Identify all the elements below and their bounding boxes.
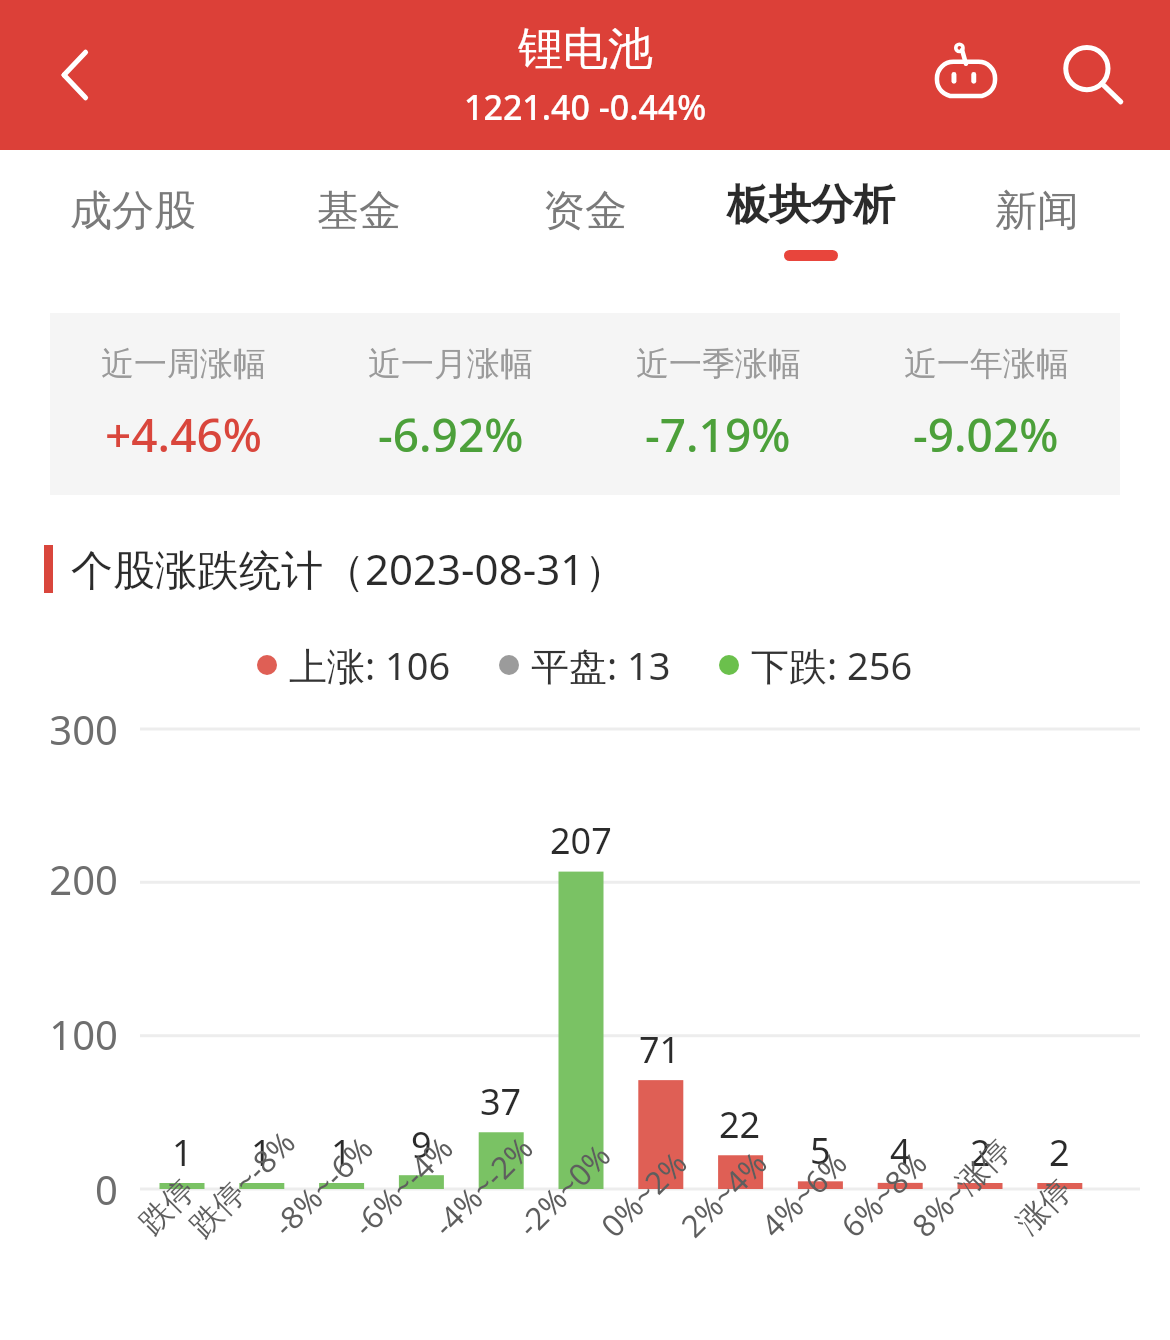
button[interactable]: 近一月涨幅 <box>317 313 584 495</box>
staticText: 200 <box>49 852 118 906</box>
staticText: 上涨: 106 <box>289 639 451 691</box>
staticText: 5 <box>810 1126 831 1175</box>
staticText: 9 <box>411 1120 432 1169</box>
staticText: 100 <box>49 1007 118 1061</box>
staticText: -8%~-6% <box>263 1127 382 1245</box>
staticText: 涨停 <box>1008 1171 1080 1242</box>
staticText: 近一年涨幅 <box>904 343 1069 385</box>
staticText: 跌停~-8% <box>180 1121 304 1245</box>
staticText: -6.92% <box>378 403 524 466</box>
staticText: 2%~4% <box>671 1142 775 1246</box>
staticText: 基金 <box>317 185 401 238</box>
button[interactable]: Back <box>28 27 124 123</box>
button[interactable]: 基金 <box>246 150 472 290</box>
staticText: -9.02% <box>913 403 1059 466</box>
staticText: 6%~8% <box>831 1142 935 1246</box>
button[interactable]: 近一季涨幅 <box>584 313 852 495</box>
staticText: 板块分析 <box>727 179 895 232</box>
staticText: 300 <box>49 702 118 756</box>
staticText: 4 <box>890 1127 911 1176</box>
staticText: 4%~6% <box>751 1142 855 1246</box>
button[interactable]: 新闻 <box>924 150 1150 290</box>
staticText: 71 <box>639 1025 681 1074</box>
staticText: 近一月涨幅 <box>368 343 533 385</box>
staticText: 资金 <box>543 185 627 238</box>
button[interactable]: 近一年涨幅 <box>852 313 1120 495</box>
staticText: 1 <box>331 1128 352 1177</box>
button[interactable]: 成分股 <box>20 150 246 290</box>
staticText: -4%~-2% <box>423 1127 542 1245</box>
staticText: 跌停 <box>131 1171 203 1242</box>
staticText: 8%~涨停 <box>902 1128 1020 1246</box>
staticText: 2 <box>1049 1128 1070 1177</box>
button[interactable]: Assistant <box>916 25 1016 125</box>
staticText: -2%~0% <box>508 1134 619 1245</box>
staticText: 个股涨跌统计（2023-08-31） <box>71 540 627 597</box>
staticText: -7.19% <box>645 403 791 466</box>
staticText: 近一周涨幅 <box>101 343 266 385</box>
staticText: +4.46% <box>105 403 262 466</box>
staticText: 新闻 <box>995 185 1079 238</box>
staticText: 平盘: 13 <box>531 639 671 691</box>
button[interactable]: 资金 <box>472 150 698 290</box>
staticText: 1221.40 -0.44% <box>464 84 707 130</box>
staticText: 2 <box>970 1128 991 1177</box>
staticText: 0%~2% <box>591 1142 695 1246</box>
staticText: -6%~-4% <box>343 1127 462 1245</box>
staticText: 22 <box>719 1100 761 1149</box>
staticText: 近一季涨幅 <box>636 343 801 385</box>
staticText: 1 <box>251 1128 272 1177</box>
button[interactable]: Search <box>1044 27 1140 123</box>
staticText: 成分股 <box>70 185 196 238</box>
staticText: 下跌: 256 <box>751 639 913 691</box>
staticText: 1 <box>172 1128 193 1177</box>
staticText: 207 <box>550 816 612 865</box>
button[interactable]: 近一周涨幅 <box>50 313 317 495</box>
staticText: 0 <box>95 1162 118 1216</box>
staticText: 锂电池 <box>518 21 653 78</box>
button[interactable]: 板块分析 <box>698 150 924 290</box>
staticText: 37 <box>480 1077 522 1126</box>
